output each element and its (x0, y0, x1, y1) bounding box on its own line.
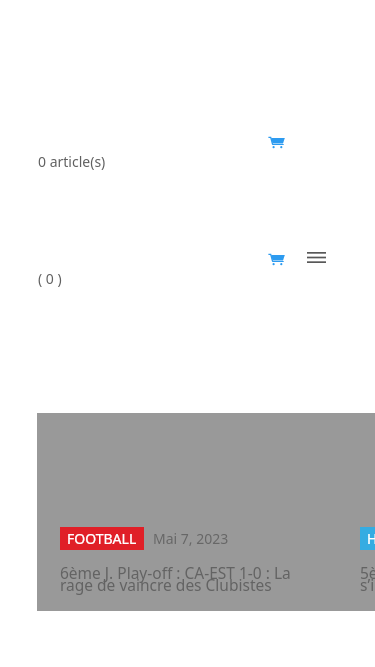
staticText: FOOTBALL (67, 529, 137, 548)
button[interactable]: Menu (297, 244, 336, 277)
staticText: 5ème J. Play-off : L’Espérance s’impose … (360, 562, 375, 596)
button[interactable]: FOOTBALL (37, 413, 337, 611)
staticText: HANDBALL (367, 529, 375, 548)
button[interactable]: Shopping cart (258, 244, 295, 277)
staticText: 0 article(s) (38, 152, 106, 171)
button[interactable]: HANDBALL (337, 413, 375, 611)
staticText: ( 0 ) (38, 269, 62, 288)
button[interactable]: Shopping cart (258, 127, 295, 160)
staticText: Mai 7, 2023 (153, 529, 229, 548)
staticText: 6ème J. Play-off : CA-EST 1-0 : La rage … (60, 562, 292, 596)
